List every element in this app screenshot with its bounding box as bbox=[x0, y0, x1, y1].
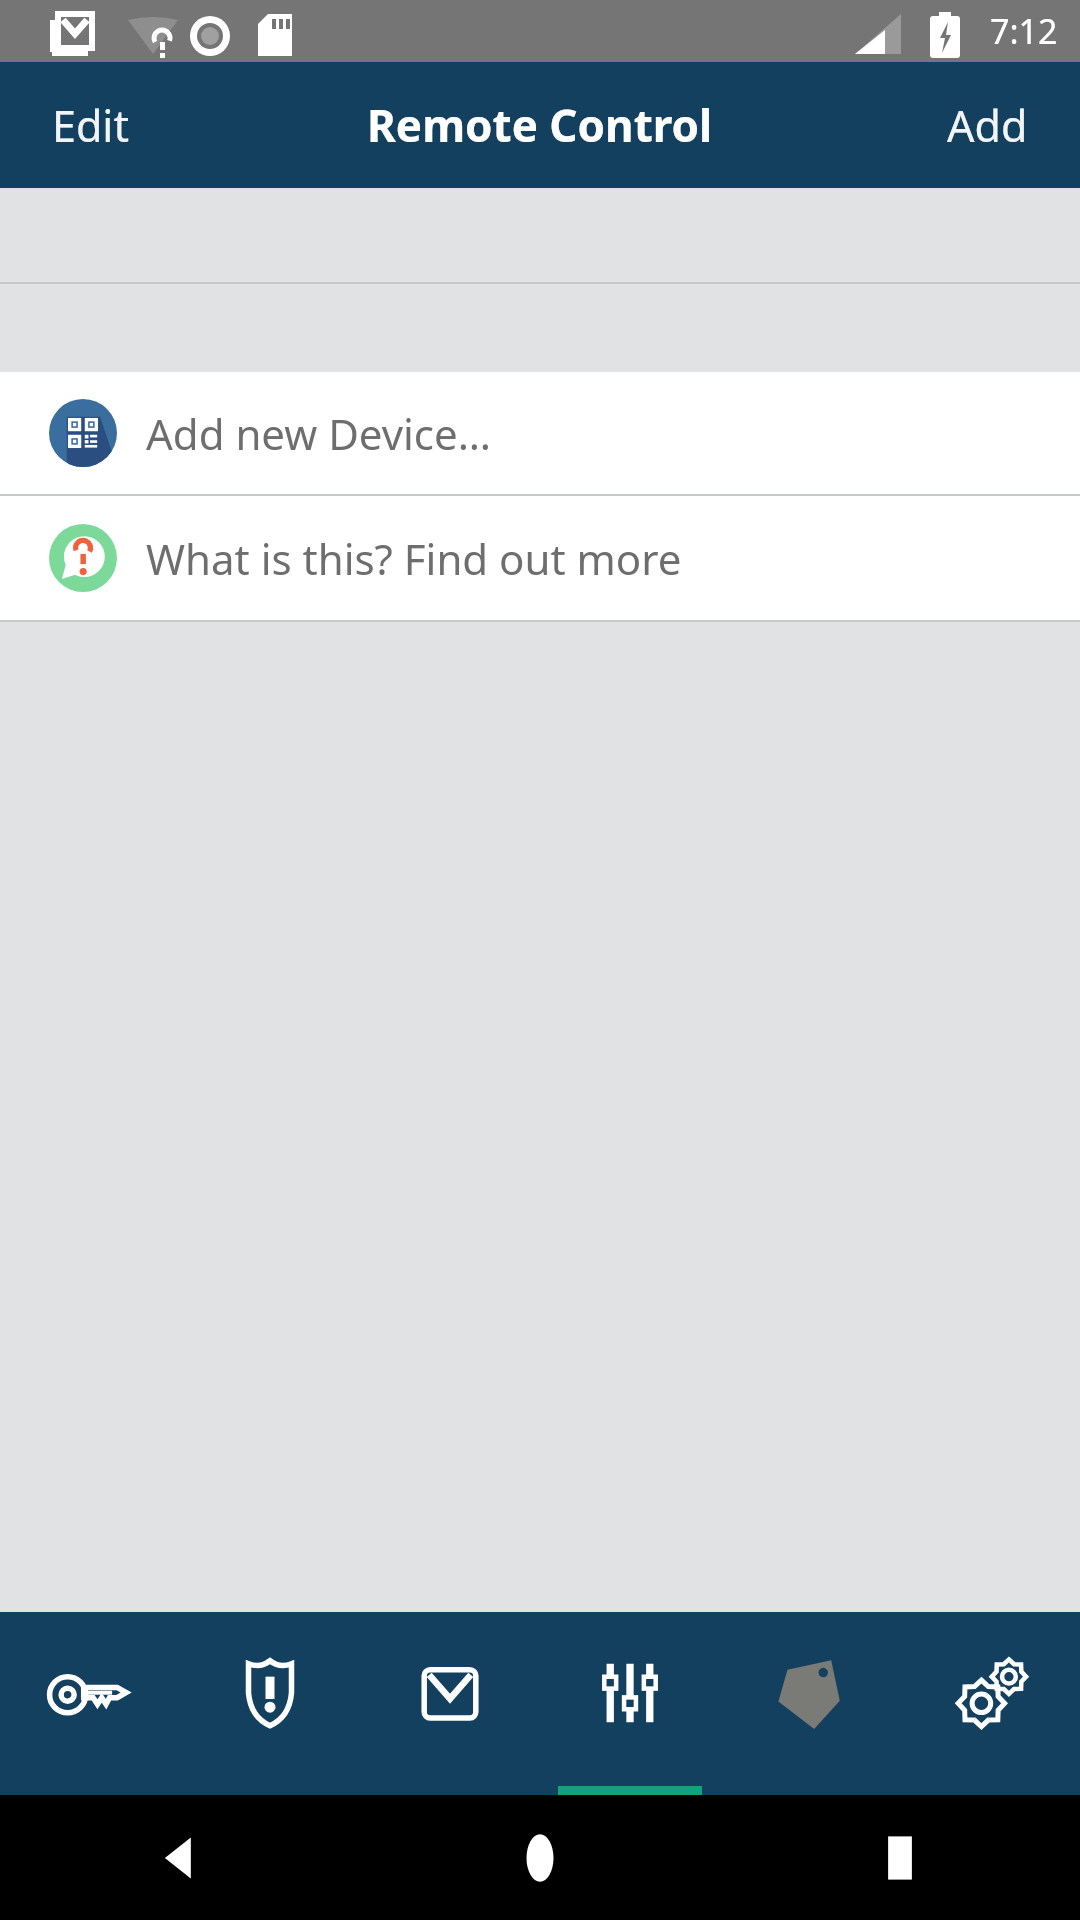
button[interactable]: Back bbox=[0, 1795, 360, 1920]
button[interactable]: Edit bbox=[40, 88, 141, 163]
button[interactable]: Security bbox=[180, 1612, 360, 1795]
button[interactable]: Tags bbox=[720, 1612, 900, 1795]
button[interactable]: Settings bbox=[900, 1612, 1080, 1795]
staticText: Remote Control bbox=[367, 95, 713, 155]
staticText: Add new Device… bbox=[146, 405, 491, 462]
button[interactable]: Add bbox=[935, 88, 1040, 163]
button[interactable]: What is this? Find out more bbox=[0, 496, 1080, 620]
button[interactable]: Home bbox=[360, 1795, 720, 1920]
staticText: Edit bbox=[52, 96, 129, 155]
button[interactable]: Recent apps bbox=[720, 1795, 1080, 1920]
staticText: 7:12 bbox=[990, 8, 1058, 54]
button[interactable]: Keys bbox=[0, 1612, 180, 1795]
button[interactable]: Mail bbox=[360, 1612, 540, 1795]
button[interactable]: Add new Device… bbox=[0, 372, 1080, 494]
staticText: What is this? Find out more bbox=[146, 530, 682, 587]
staticText: Add bbox=[947, 96, 1028, 155]
button[interactable]: Remote Control bbox=[540, 1612, 720, 1795]
